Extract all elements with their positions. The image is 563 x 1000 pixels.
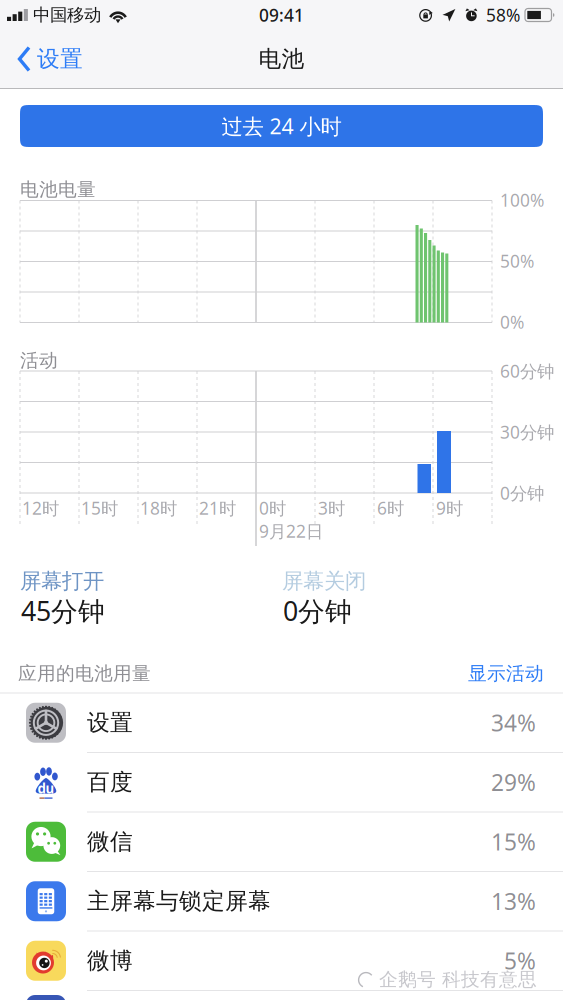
- staticText: 屏幕关闭: [282, 568, 366, 594]
- staticText: 应用的电池用量: [18, 662, 151, 685]
- staticText: 3时: [318, 496, 345, 519]
- staticText: 15时: [81, 496, 118, 519]
- staticText: 18时: [140, 496, 177, 519]
- staticText: 9时: [436, 496, 463, 519]
- button[interactable]: du: [0, 753, 563, 811]
- staticText: 过去 24 小时: [221, 112, 341, 140]
- staticText: 设置: [37, 45, 83, 73]
- staticText: 50%: [500, 249, 534, 272]
- staticText: 电池电量: [20, 178, 96, 201]
- staticText: 12时: [22, 496, 59, 519]
- staticText: 58%: [486, 3, 520, 26]
- staticText: 百度: [87, 768, 133, 796]
- staticText: 13%: [491, 886, 536, 916]
- staticText: 15%: [491, 827, 536, 857]
- staticText: 屏幕打开: [20, 568, 104, 594]
- button[interactable]: 微信: [0, 812, 563, 871]
- staticText: 100%: [500, 188, 544, 211]
- button[interactable]: 设置: [0, 37, 95, 81]
- staticText: 34%: [491, 708, 536, 738]
- staticText: 30分钟: [500, 420, 554, 443]
- staticText: 中国移动: [33, 4, 101, 26]
- staticText: 45分钟: [21, 593, 105, 628]
- staticText: 主屏幕与锁定屏幕: [87, 887, 271, 915]
- button[interactable]: 微博: [0, 931, 563, 990]
- staticText: 设置: [87, 709, 133, 737]
- staticText: 活动: [20, 349, 58, 372]
- button[interactable]: [0, 991, 563, 1000]
- button[interactable]: 设置: [0, 693, 563, 752]
- staticText: 电池: [258, 45, 304, 73]
- staticText: 微博: [87, 947, 133, 975]
- staticText: 0时: [259, 496, 286, 519]
- staticText: 0分钟: [500, 481, 544, 504]
- staticText: 显示活动: [468, 662, 544, 685]
- staticText: 29%: [491, 767, 536, 797]
- staticText: 21时: [199, 496, 236, 519]
- staticText: 5%: [504, 946, 536, 976]
- staticText: 9月22日: [259, 519, 323, 542]
- staticText: 企鹅号 科技有意思: [379, 968, 537, 991]
- staticText: 6时: [377, 496, 404, 519]
- button[interactable]: 主屏幕与锁定屏幕: [0, 872, 563, 930]
- staticText: 09:41: [259, 3, 304, 26]
- staticText: du: [37, 780, 54, 797]
- staticText: 60分钟: [500, 359, 554, 382]
- staticText: 0分钟: [283, 593, 352, 628]
- button[interactable]: 显示活动: [458, 655, 558, 692]
- staticText: 0%: [500, 310, 524, 333]
- staticText: 微信: [87, 828, 133, 856]
- button[interactable]: 过去 24 小时: [20, 105, 543, 147]
